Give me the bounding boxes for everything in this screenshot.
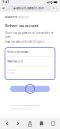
button[interactable]: Tabs xyxy=(48,119,57,128)
staticText: naar uw accountinstellingen. xyxy=(5,40,45,43)
button[interactable]: Share xyxy=(25,119,34,128)
staticText: Wachtwoord xyxy=(7,60,23,63)
staticText: vergeten? xyxy=(7,72,15,74)
button[interactable]: account.example.com xyxy=(6,6,51,10)
button[interactable]: More options xyxy=(55,6,58,11)
staticText: ⋮ xyxy=(55,6,59,10)
button[interactable]: Reload xyxy=(51,6,55,11)
staticText: Beheer uw account xyxy=(5,23,38,28)
button[interactable]: Back xyxy=(2,119,11,128)
button[interactable]: Wachtwoord xyxy=(5,69,16,74)
staticText: Voer uw gegevens in om verder te gaan xyxy=(5,31,54,38)
staticText: Door verder te gaan, gaat u akkoord met xyxy=(11,105,39,106)
staticText: ↻ xyxy=(52,7,54,10)
staticText: EXAMPLE xyxy=(5,15,17,19)
button[interactable]: Forward xyxy=(14,119,23,128)
staticText: Wachtwoord xyxy=(7,69,16,71)
staticText: ᴀA xyxy=(2,6,5,10)
staticText: account.example.com xyxy=(16,6,43,10)
button[interactable]: Page settings xyxy=(2,6,6,11)
staticText: Account xyxy=(18,15,29,19)
button[interactable]: Bookmarks xyxy=(37,119,46,128)
staticText: 9:41 xyxy=(2,0,9,4)
button[interactable] xyxy=(10,84,50,94)
staticText: Gebruikersnaam xyxy=(7,50,28,54)
